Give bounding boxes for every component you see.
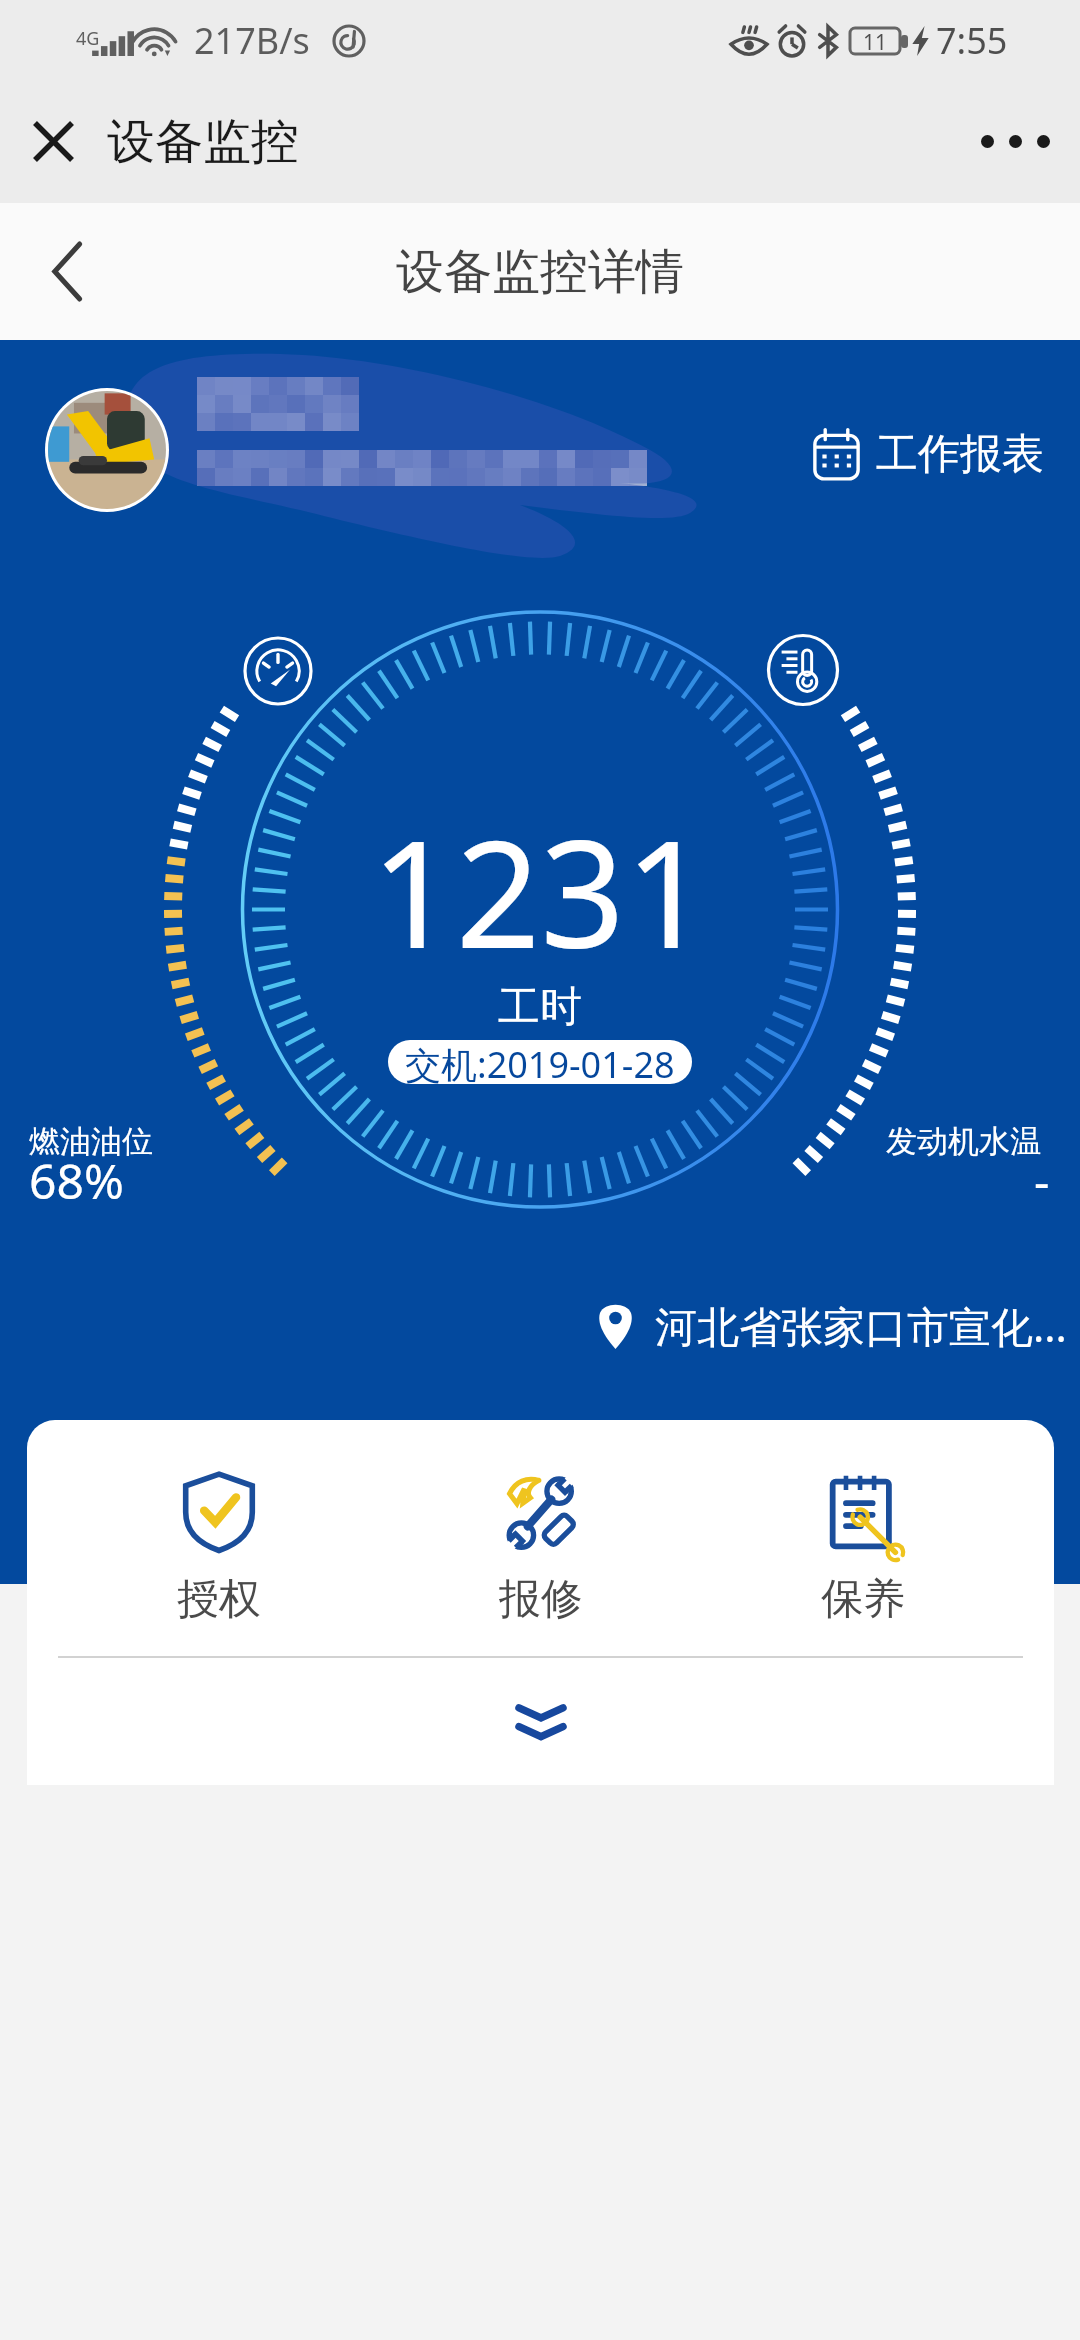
staticText: 工作报表 [876,428,1044,481]
staticText: 68% [29,1148,124,1213]
staticText: 11 [863,28,888,54]
staticText: 燃油油位 [29,1122,153,1161]
staticText: 工时 [498,981,582,1034]
staticText: 设备监控 [107,112,299,172]
button[interactable]: 报修 [380,1420,702,1642]
staticText: 发动机水温 [886,1122,1041,1161]
staticText: 保养 [821,1573,905,1626]
button[interactable]: 工作报表 [813,428,1044,481]
button[interactable]: 关闭 [0,80,107,203]
staticText: - [1034,1148,1050,1213]
staticText: 1231 [371,790,710,992]
button[interactable]: 展开 [466,1673,616,1773]
button[interactable]: 更多 [950,80,1080,203]
staticText: 217B/s [194,16,310,65]
button[interactable]: 授权 [57,1420,380,1642]
staticText: 7:55 [936,16,1008,65]
button[interactable]: 保养 [702,1420,1024,1642]
button[interactable]: 返回 [0,203,134,340]
staticText: 4G [76,26,100,51]
staticText: 河北省张家口市宣化... [655,1297,1067,1354]
staticText: 交机:2019-01-28 [405,1040,675,1084]
staticText: 授权 [177,1573,261,1626]
staticText: 报修 [499,1573,583,1626]
staticText: 设备监控详情 [396,242,684,302]
button[interactable]: 河北省张家口市宣化... [598,1297,1067,1354]
